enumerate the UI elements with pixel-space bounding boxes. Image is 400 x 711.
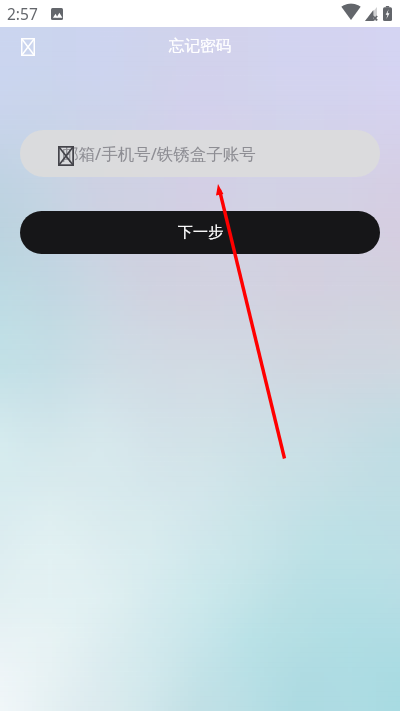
button[interactable]: 下一步: [20, 211, 380, 254]
button[interactable]: Back: [8, 27, 42, 64]
staticText: 忘记密码: [169, 36, 231, 56]
staticText: 邮箱/手机号/铁锈盒子账号: [62, 142, 256, 165]
button[interactable]: 邮箱/手机号/铁锈盒子账号: [20, 130, 380, 177]
staticText: 下一步: [178, 223, 223, 242]
staticText: 2:57: [7, 3, 38, 24]
